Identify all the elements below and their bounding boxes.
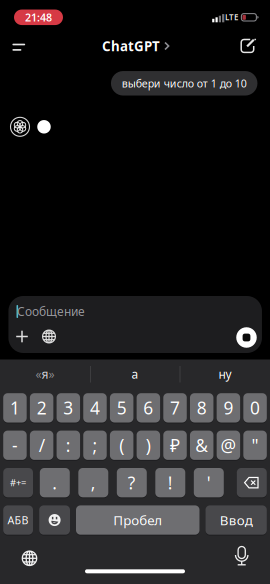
button[interactable]: АБВ: [3, 505, 33, 535]
button[interactable]: Dictate: [234, 545, 250, 567]
staticText: (: [119, 434, 124, 457]
button[interactable]: 2: [30, 393, 53, 422]
staticText: &: [195, 434, 208, 457]
button[interactable]: #+=: [3, 468, 33, 497]
staticText: ₽: [170, 434, 180, 457]
staticText: ?: [128, 471, 136, 494]
staticText: ChatGPT: [102, 37, 160, 55]
staticText: 3: [63, 396, 73, 419]
staticText: 9: [223, 396, 233, 419]
button[interactable]: 7: [163, 393, 187, 422]
button[interactable]: Search the web: [41, 328, 57, 344]
staticText: а: [131, 366, 138, 382]
button[interactable]: 8: [190, 393, 213, 422]
staticText: LTE: [225, 12, 238, 22]
staticText: ): [146, 434, 151, 457]
staticText: ну: [218, 366, 231, 382]
button[interactable]: /: [30, 431, 53, 460]
button[interactable]: @: [217, 431, 240, 460]
staticText: »: [48, 366, 54, 382]
button[interactable]: (: [110, 431, 133, 460]
button[interactable]: Ввод: [205, 505, 267, 535]
button[interactable]: ;: [83, 431, 107, 460]
button[interactable]: Stop generating: [236, 327, 257, 348]
button[interactable]: Suggestion а: [95, 362, 175, 386]
staticText: :: [66, 434, 71, 457]
button[interactable]: Open sidebar: [0, 32, 36, 60]
staticText: @: [220, 434, 236, 457]
button[interactable]: Suggestion ну: [185, 362, 265, 386]
button[interactable]: ": [243, 431, 267, 460]
staticText: !: [168, 471, 173, 494]
staticText: АБВ: [8, 513, 29, 527]
staticText: 1: [10, 396, 20, 419]
button[interactable]: -: [3, 431, 27, 460]
staticText: 2: [37, 396, 47, 419]
staticText: /: [39, 434, 45, 457]
staticText: 21:48: [25, 10, 52, 24]
button[interactable]: :: [57, 431, 80, 460]
button[interactable]: ₽: [163, 431, 187, 460]
button[interactable]: Attach: [13, 327, 31, 345]
staticText: -: [12, 434, 18, 457]
button[interactable]: .: [40, 468, 70, 497]
staticText: 4: [90, 396, 100, 419]
button[interactable]: Delete: [237, 468, 267, 497]
staticText: Сообщение: [17, 303, 85, 319]
button[interactable]: !: [155, 468, 185, 497]
button[interactable]: ): [137, 431, 160, 460]
button[interactable]: Next keyboard: [21, 550, 37, 566]
button[interactable]: ?: [117, 468, 147, 497]
button[interactable]: 4: [83, 393, 107, 422]
button[interactable]: ': [194, 468, 224, 497]
button[interactable]: 1: [3, 393, 27, 422]
button[interactable]: Пробел: [76, 505, 199, 535]
button[interactable]: 6: [137, 393, 160, 422]
staticText: 7: [170, 396, 180, 419]
staticText: 8: [197, 396, 207, 419]
staticText: выбери число от 1 до 10: [122, 76, 247, 90]
staticText: .: [52, 471, 57, 494]
button[interactable]: Emoji: [39, 505, 70, 535]
staticText: ': [207, 471, 211, 494]
staticText: Ввод: [220, 511, 253, 529]
staticText: 0: [250, 396, 260, 419]
staticText: 5: [117, 396, 127, 419]
staticText: «: [35, 366, 41, 382]
staticText: ,: [91, 471, 96, 494]
staticText: Пробел: [113, 511, 162, 529]
button[interactable]: 0: [243, 393, 267, 422]
button[interactable]: Recording indicator, 21:48: [14, 10, 63, 25]
staticText: я: [41, 366, 48, 382]
button[interactable]: ChatGPT model menu: [102, 37, 170, 55]
staticText: 6: [143, 396, 153, 419]
staticText: ": [252, 434, 259, 457]
staticText: ;: [92, 434, 97, 457]
button[interactable]: &: [190, 431, 213, 460]
button[interactable]: Suggestion я: [5, 362, 85, 386]
button[interactable]: 3: [57, 393, 80, 422]
button[interactable]: New chat: [236, 35, 258, 57]
button[interactable]: ,: [78, 468, 108, 497]
button[interactable]: 9: [217, 393, 240, 422]
staticText: #+=: [10, 476, 26, 489]
button[interactable]: 5: [110, 393, 133, 422]
